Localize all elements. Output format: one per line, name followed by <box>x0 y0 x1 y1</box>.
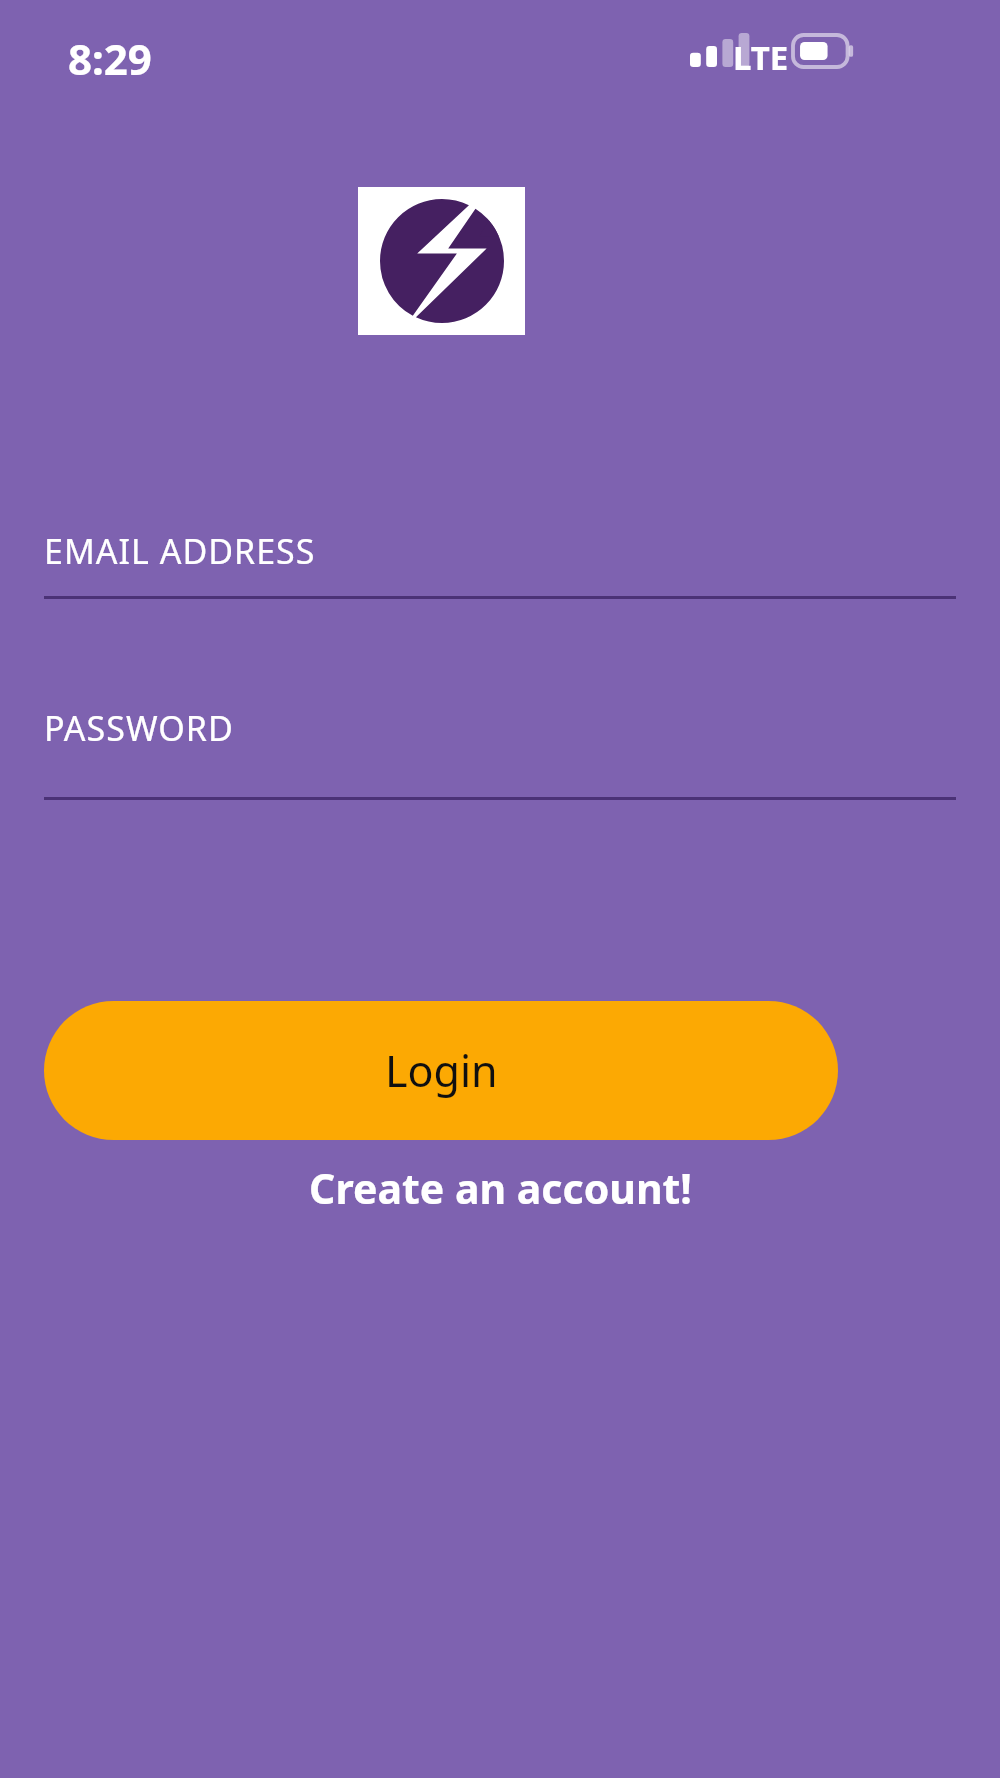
staticText: LTE <box>733 35 789 80</box>
button[interactable]: Login <box>44 1001 838 1140</box>
staticText: PASSWORD <box>44 705 234 751</box>
staticText: Create an account! <box>309 1160 692 1216</box>
button[interactable]: PASSWORD <box>0 695 1000 775</box>
other: App logo <box>380 199 504 323</box>
button[interactable]: Create an account! <box>0 1152 1000 1224</box>
button[interactable]: EMAIL ADDRESS <box>0 518 1000 598</box>
staticText: EMAIL ADDRESS <box>44 528 316 574</box>
staticText: Login <box>385 1041 498 1100</box>
staticText: 8:29 <box>68 30 152 87</box>
